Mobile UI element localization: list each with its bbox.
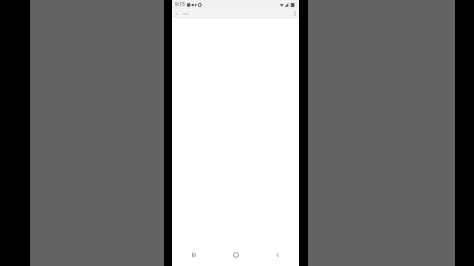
button[interactable]: Home [215,244,257,266]
button[interactable]: Recent apps [172,244,215,266]
button[interactable]: Back [257,244,299,266]
staticText: 9:15 [175,1,185,8]
